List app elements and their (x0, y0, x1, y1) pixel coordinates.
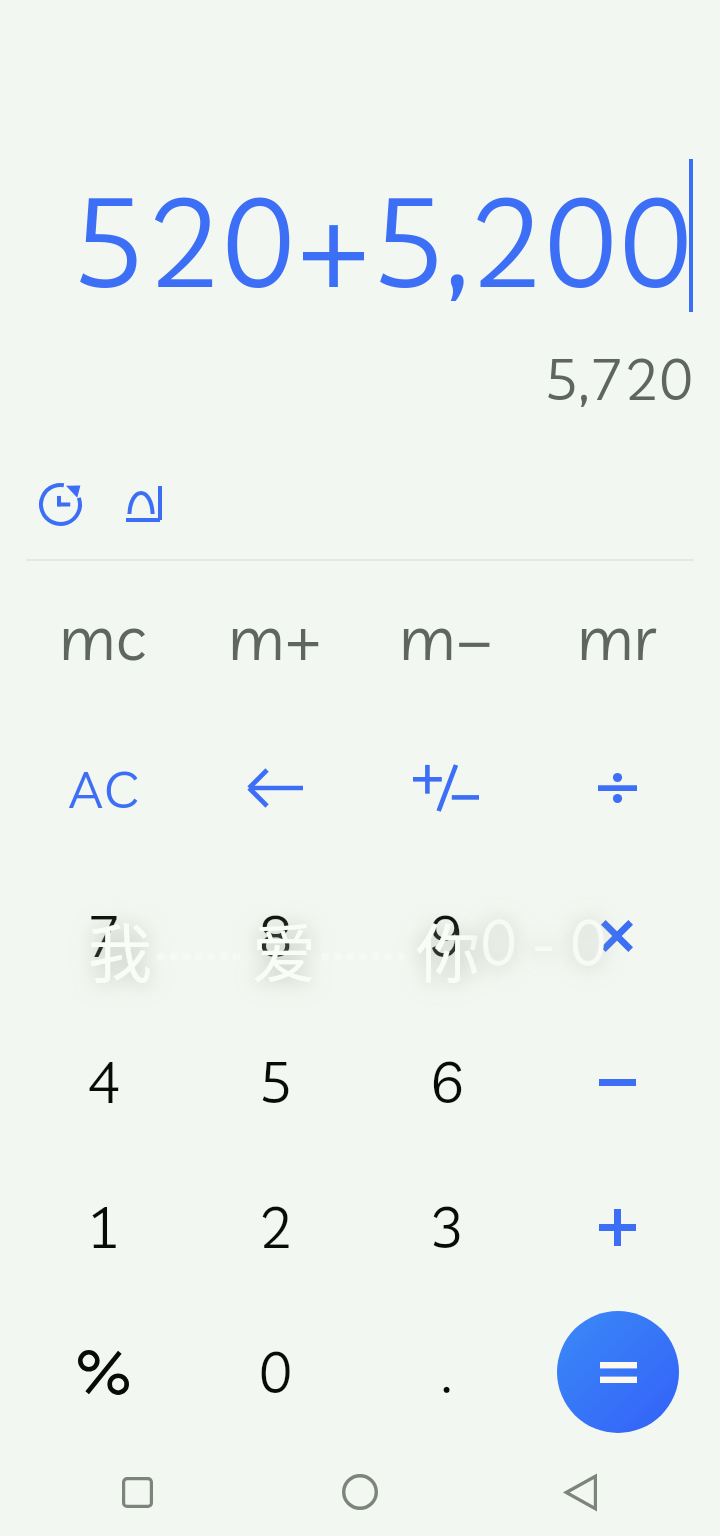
button[interactable]: Backspace (190, 721, 360, 855)
staticText: 爱 (252, 903, 316, 996)
button[interactable]: 8 (190, 869, 360, 1003)
staticText: 8 (258, 900, 293, 972)
button[interactable]: 7 (18, 869, 188, 1003)
button[interactable]: 2 (190, 1160, 360, 1294)
button[interactable]: 4 (18, 1015, 188, 1149)
button[interactable]: Multiply (532, 869, 702, 1003)
staticText: 9 (429, 900, 464, 972)
button[interactable]: Plus (532, 1160, 702, 1294)
button[interactable]: 9 (361, 869, 531, 1003)
button[interactable]: 0 (190, 1305, 360, 1439)
staticText: m+ (228, 598, 322, 676)
staticText: 5 (258, 1046, 293, 1118)
staticText: 4 (86, 1046, 121, 1118)
button[interactable]: Divide (532, 721, 702, 855)
button[interactable]: Plus minus (361, 721, 531, 855)
staticText: 0 (258, 1336, 293, 1408)
button[interactable]: 1 (18, 1160, 188, 1294)
button[interactable]: m minus (361, 570, 531, 704)
staticText: 你 (416, 903, 480, 996)
button[interactable]: mr (532, 570, 702, 704)
staticText: m− (399, 598, 493, 676)
staticText: mc (59, 598, 146, 676)
button[interactable]: mc (17, 570, 187, 704)
button[interactable]: m plus (190, 570, 360, 704)
button[interactable]: AC (18, 721, 188, 855)
button[interactable]: . (361, 1305, 531, 1439)
button[interactable]: Back (490, 1448, 670, 1536)
button[interactable]: Recents (47, 1448, 227, 1536)
staticText: 5,720 (544, 342, 694, 415)
staticText: mr (577, 598, 657, 676)
staticText: 2 (258, 1191, 293, 1263)
staticText: 3 (429, 1191, 464, 1263)
button[interactable]: Graph (110, 470, 178, 538)
button[interactable]: History (26, 470, 94, 538)
staticText: 7 (86, 900, 121, 972)
staticText: . (441, 1336, 452, 1408)
staticText: 0 - 0 (480, 903, 608, 981)
staticText: 520+5,200 (71, 161, 694, 318)
button[interactable]: Minus (532, 1015, 702, 1149)
button[interactable]: 5 (190, 1015, 360, 1149)
button[interactable]: 3 (361, 1160, 531, 1294)
staticText: AC (68, 756, 139, 821)
staticText: 我 (88, 903, 152, 996)
button[interactable]: 6 (361, 1015, 531, 1149)
staticText: 6 (429, 1046, 464, 1118)
button[interactable]: % (18, 1305, 188, 1439)
button[interactable]: Home (270, 1448, 450, 1536)
staticText: 1 (86, 1191, 121, 1263)
button[interactable]: Equals (557, 1311, 679, 1433)
